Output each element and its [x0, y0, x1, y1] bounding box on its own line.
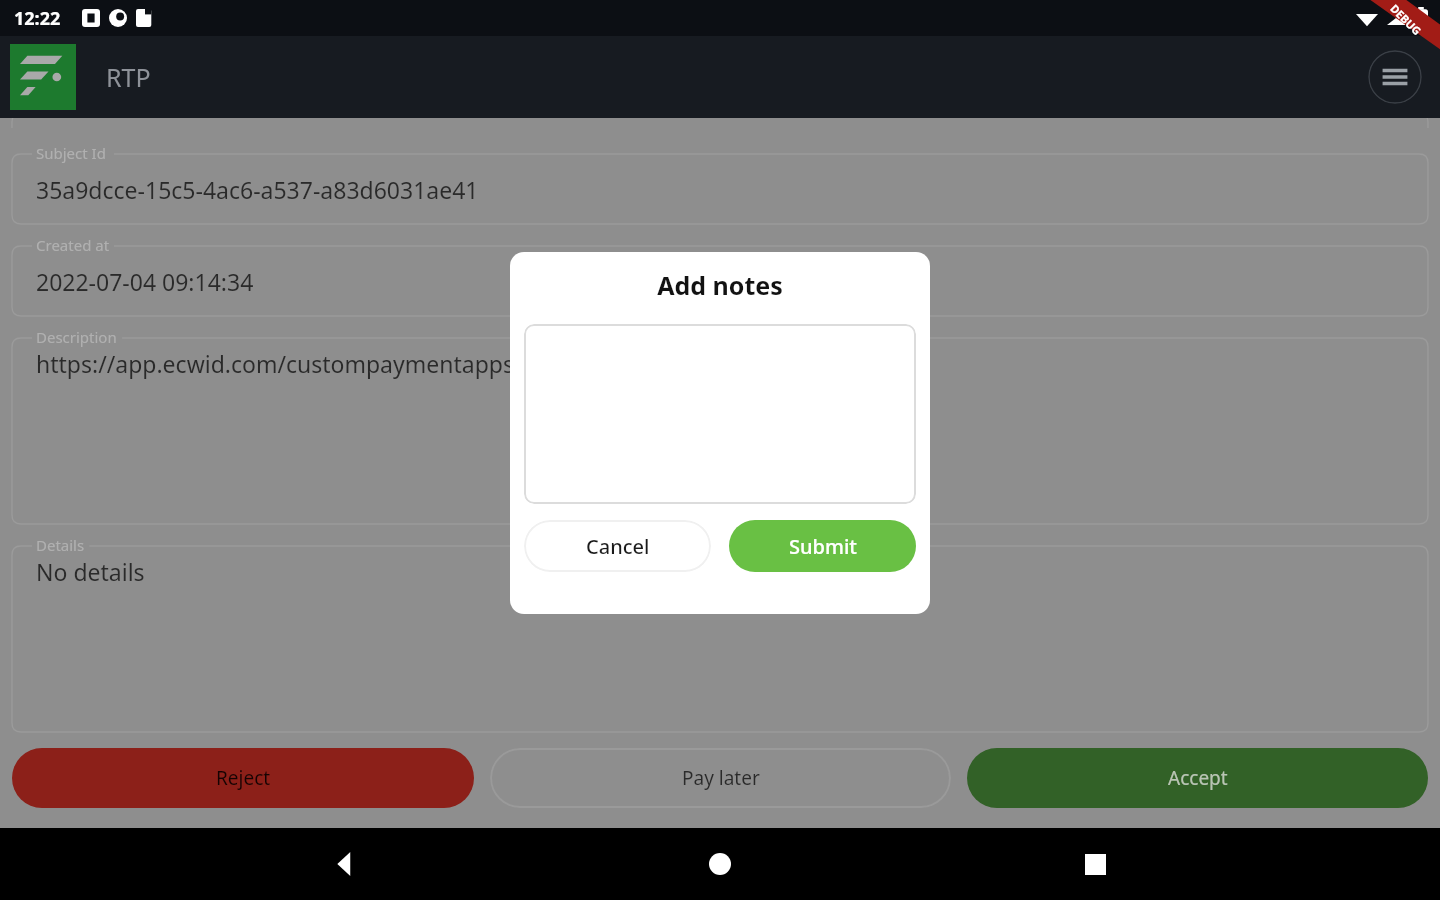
staticText: 35a9dcce-15c5-4ac6-a537-a83d6031ae41: [36, 174, 479, 205]
staticText: Pay later: [682, 765, 760, 791]
staticText: Cancel: [586, 533, 650, 560]
staticText: Add notes: [524, 268, 916, 302]
other: App logo: [10, 44, 76, 110]
button[interactable]: Reject: [12, 748, 474, 808]
staticText: No details: [36, 556, 145, 587]
staticText: Submit: [789, 533, 857, 560]
staticText: Description: [36, 327, 117, 347]
staticText: Accept: [1168, 765, 1228, 791]
staticText: Reject: [216, 765, 271, 791]
button[interactable]: Home: [690, 834, 750, 894]
staticText: 2022-07-04 09:14:34: [36, 266, 254, 297]
button[interactable]: Menu: [1368, 50, 1422, 104]
staticText: 12:22: [14, 6, 61, 31]
button[interactable]: Accept: [967, 748, 1428, 808]
staticText: Created at: [36, 235, 110, 255]
staticText: RTP: [106, 60, 151, 94]
button[interactable]: Pay later: [490, 748, 951, 808]
button[interactable]: Cancel: [524, 520, 711, 572]
button[interactable]: Submit: [729, 520, 916, 572]
button[interactable]: [524, 324, 916, 504]
staticText: https://app.ecwid.com/custompaymentapps?…: [36, 348, 741, 379]
button[interactable]: Recents: [1065, 834, 1125, 894]
staticText: DEBUG: [1387, 1, 1425, 38]
button[interactable]: Back: [315, 834, 375, 894]
staticText: Details: [36, 535, 85, 555]
staticText: Subject Id: [36, 143, 106, 163]
